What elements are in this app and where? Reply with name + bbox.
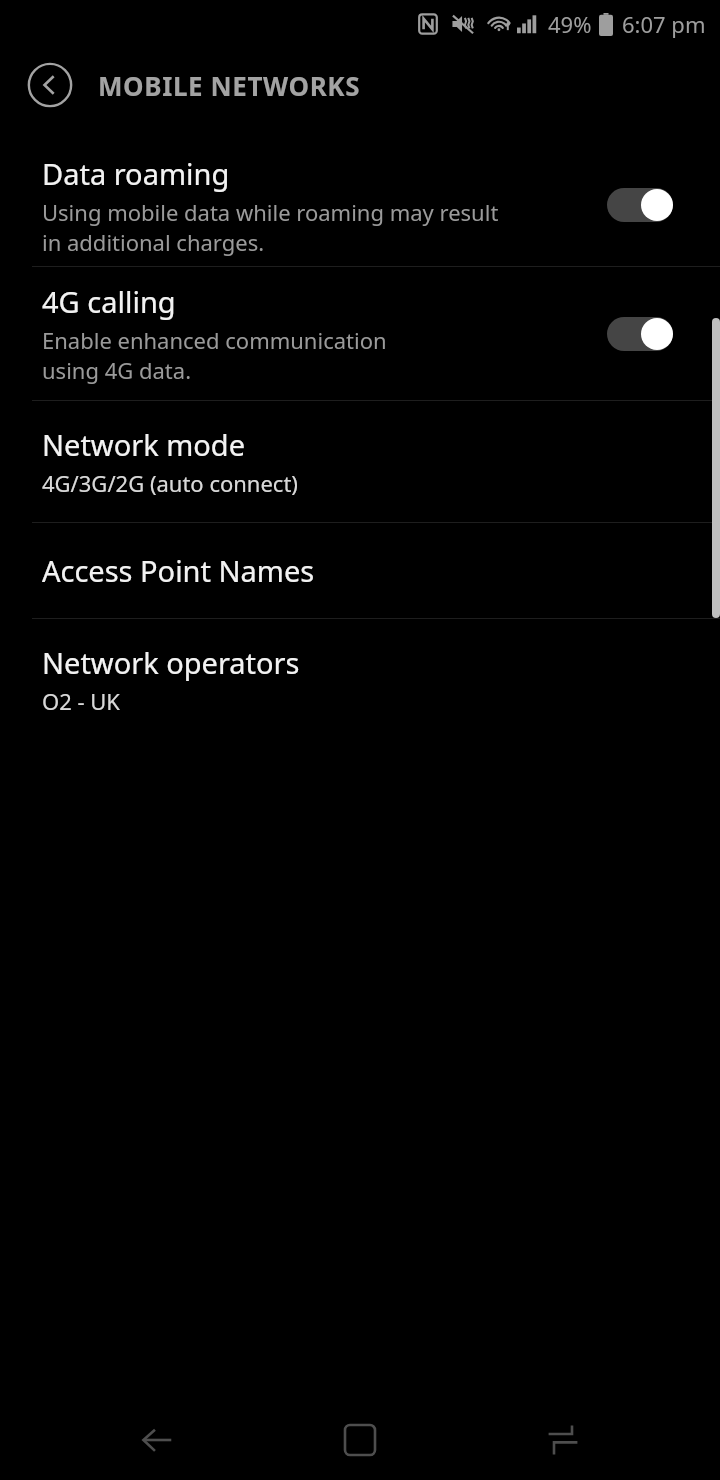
- button[interactable]: Recent apps: [523, 1400, 603, 1480]
- staticText: 4G/3G/2G (auto connect): [42, 468, 298, 498]
- button[interactable]: Network mode: [0, 401, 720, 522]
- staticText: 6:07 pm: [622, 9, 706, 39]
- staticText: O2 - UK: [42, 686, 120, 716]
- staticText: 4G calling: [42, 282, 176, 321]
- staticText: Network mode: [42, 425, 246, 464]
- button[interactable]: Home: [320, 1400, 400, 1480]
- staticText: Access Point Names: [42, 551, 315, 590]
- staticText: Enable enhanced communication using 4G d…: [42, 325, 387, 385]
- staticText: Using mobile data while roaming may resu…: [42, 197, 499, 257]
- button[interactable]: Back: [24, 59, 76, 111]
- button[interactable]: Data roaming: [0, 144, 720, 266]
- button[interactable]: Back: [117, 1400, 197, 1480]
- staticText: 49%: [548, 9, 592, 39]
- button[interactable]: Access Point Names: [0, 523, 720, 618]
- staticText: Network operators: [42, 643, 300, 682]
- staticText: MOBILE NETWORKS: [98, 68, 361, 103]
- button[interactable]: Data roaming toggle: [607, 185, 673, 225]
- button[interactable]: Network operators: [0, 619, 720, 739]
- button[interactable]: 4G calling toggle: [607, 314, 673, 354]
- button[interactable]: 4G calling: [0, 267, 720, 400]
- staticText: Data roaming: [42, 154, 230, 193]
